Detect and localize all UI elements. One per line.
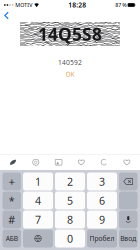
staticText: 14Q5S8 — [38, 22, 102, 45]
staticText: + — [9, 174, 15, 189]
staticText: 3 — [99, 174, 105, 189]
button[interactable]: 3 — [87, 172, 117, 190]
staticText: * — [9, 193, 15, 208]
staticText: MOTIV — [15, 1, 32, 9]
button[interactable]: Digital Touch — [93, 154, 115, 170]
button[interactable]: АБВ — [2, 229, 21, 247]
button[interactable]: Favorites — [70, 154, 92, 170]
button[interactable]: 6 — [87, 191, 117, 209]
button[interactable]: 1 — [23, 172, 53, 190]
button[interactable] — [119, 191, 137, 209]
staticText: 1 — [35, 174, 41, 189]
staticText: 4 — [35, 193, 41, 208]
button[interactable]: Photos — [48, 154, 70, 170]
button[interactable]: Back — [0, 10, 16, 21]
button[interactable]: Delete — [119, 172, 137, 190]
staticText: 5 — [67, 193, 73, 208]
staticText: Пробел — [89, 234, 114, 243]
staticText: 2 — [67, 174, 73, 189]
staticText: 9 — [99, 212, 105, 227]
button[interactable]: Пробел — [87, 229, 117, 247]
staticText: # — [8, 212, 15, 227]
staticText: 0 — [67, 231, 73, 246]
staticText: 6 — [99, 193, 105, 208]
button[interactable]: + — [2, 172, 21, 190]
button[interactable]: 5 — [55, 191, 85, 209]
button[interactable]: Stickers — [2, 154, 24, 170]
staticText: 140592 — [58, 58, 82, 67]
staticText: Ввод — [120, 234, 136, 243]
button[interactable]: Dictation — [119, 210, 137, 228]
button[interactable]: Next keyboard — [23, 229, 53, 247]
staticText: 8 — [67, 212, 73, 227]
button[interactable]: 8 — [55, 210, 85, 228]
button[interactable]: 0 — [55, 229, 85, 247]
button[interactable]: Memoji — [25, 154, 47, 170]
staticText: 18:28 — [68, 1, 86, 9]
button[interactable]: OK — [58, 67, 81, 82]
button[interactable]: # — [2, 210, 21, 228]
button[interactable]: 4 — [23, 191, 53, 209]
button[interactable]: 9 — [87, 210, 117, 228]
staticText: АБВ — [6, 234, 18, 243]
button[interactable]: 2 — [55, 172, 85, 190]
staticText: 7 — [35, 212, 41, 227]
staticText: 87 % — [115, 1, 126, 9]
button[interactable]: More apps — [116, 154, 138, 170]
button[interactable]: Ввод — [119, 229, 137, 247]
button[interactable]: 7 — [23, 210, 53, 228]
button[interactable]: * — [2, 191, 21, 209]
staticText: OK — [65, 70, 74, 79]
